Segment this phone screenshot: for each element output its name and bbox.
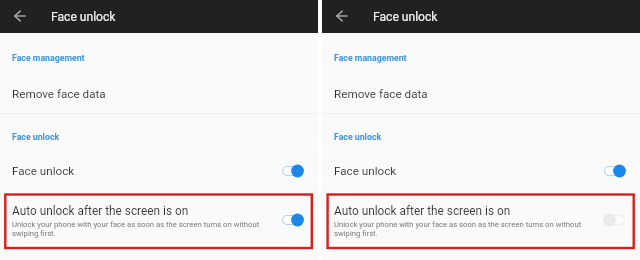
staticText: Face unlock	[373, 10, 438, 24]
staticText: Auto unlock after the screen is on	[12, 204, 189, 218]
staticText: Auto unlock after the screen is on	[334, 204, 511, 218]
button[interactable]: Switch off	[604, 211, 625, 229]
staticText: Remove face data	[334, 87, 428, 101]
staticText: Face management	[334, 53, 407, 63]
staticText: Remove face data	[12, 87, 106, 101]
staticText: Face management	[12, 53, 85, 63]
staticText: Face unlock	[51, 10, 116, 24]
staticText: Unlock your phone with your face as soon…	[334, 220, 586, 238]
button[interactable]: Switch on	[282, 211, 303, 229]
staticText: Face unlock	[12, 164, 75, 178]
staticText: Unlock your phone with your face as soon…	[12, 220, 264, 238]
button[interactable]: Face unlock	[322, 158, 640, 184]
button[interactable]: Auto unlock after the screen is on	[0, 196, 318, 244]
staticText: Face unlock	[334, 164, 397, 178]
staticText: Face unlock	[334, 132, 382, 142]
button[interactable]: Face unlock	[0, 158, 318, 184]
button[interactable]: Switch on	[282, 162, 303, 180]
button[interactable]: Back	[329, 0, 355, 32]
staticText: Face unlock	[12, 132, 60, 142]
button[interactable]: Switch on	[604, 162, 625, 180]
button[interactable]: Remove face data	[0, 80, 318, 107]
button[interactable]: Remove face data	[322, 80, 640, 107]
button[interactable]: Auto unlock after the screen is on	[322, 196, 640, 244]
button[interactable]: Back	[7, 0, 33, 32]
